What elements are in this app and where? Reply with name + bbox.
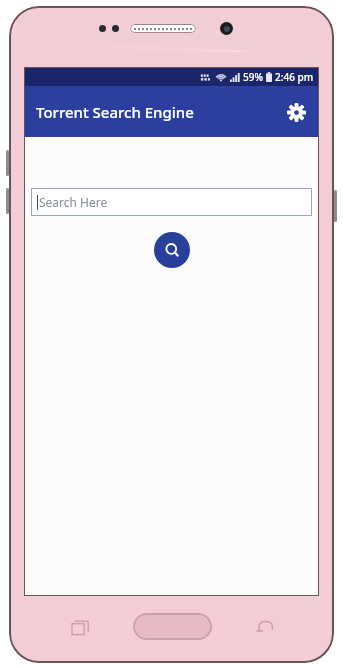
button[interactable]: Settings: [279, 95, 313, 129]
button[interactable]: Search: [154, 232, 190, 268]
button[interactable]: Search Here: [31, 188, 312, 216]
staticText: 2:46 pm: [275, 70, 314, 84]
staticText: Search Here: [39, 194, 108, 210]
button[interactable]: Recents: [68, 616, 92, 638]
staticText: 59%: [243, 70, 263, 84]
staticText: Torrent Search Engine: [36, 102, 194, 122]
button[interactable]: Home: [133, 613, 212, 640]
button[interactable]: Back: [252, 616, 276, 638]
